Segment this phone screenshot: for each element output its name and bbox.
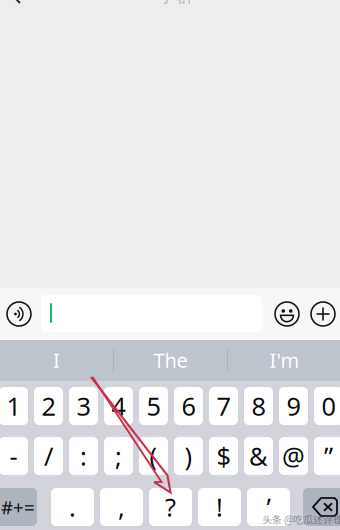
staticText: 8	[251, 389, 265, 423]
staticText: 4	[111, 389, 125, 423]
button[interactable]: Voice input	[0, 0, 24, 24]
button[interactable]: 4	[0, 0, 29, 38]
button[interactable]: 5	[0, 0, 29, 38]
button[interactable]: 2	[0, 0, 29, 38]
staticText: 7	[216, 389, 230, 423]
button[interactable]: Back	[0, 0, 26, 26]
staticText: 小群	[157, 0, 195, 7]
button[interactable]: ?	[0, 0, 43, 38]
button[interactable]: 3	[0, 0, 29, 38]
staticText: ,	[118, 490, 125, 524]
button[interactable]: 0	[0, 0, 29, 38]
staticText: (	[149, 439, 157, 473]
button[interactable]: )	[0, 0, 29, 38]
button[interactable]: The	[0, 0, 113, 40]
staticText: @	[282, 439, 305, 473]
button[interactable]: Delete	[0, 0, 44, 38]
staticText: 5	[146, 389, 160, 423]
staticText: $	[216, 439, 230, 473]
button[interactable]: ,	[0, 0, 43, 38]
staticText: -	[9, 439, 17, 473]
button[interactable]: $	[0, 0, 29, 38]
staticText: #+=	[1, 495, 35, 519]
staticText: 0	[321, 389, 335, 423]
button[interactable]: /	[0, 0, 29, 38]
staticText: I	[53, 347, 60, 373]
button[interactable]: ;	[0, 0, 29, 38]
staticText: ”	[324, 439, 333, 473]
button[interactable]: !	[0, 0, 43, 38]
button[interactable]: 7	[0, 0, 29, 38]
staticText: 3	[76, 389, 90, 423]
button[interactable]: I'm	[0, 0, 113, 40]
button[interactable]: Emoji	[0, 0, 24, 24]
staticText: :	[80, 439, 87, 473]
button[interactable]: @	[0, 0, 29, 38]
staticText: /	[44, 439, 53, 473]
button[interactable]: #+=	[0, 0, 44, 38]
staticText: 6	[181, 389, 195, 423]
staticText: I'm	[269, 347, 299, 373]
button[interactable]: -	[0, 0, 29, 38]
button[interactable]: 1	[0, 0, 29, 38]
staticText: ;	[115, 439, 122, 473]
staticText: 2	[41, 389, 55, 423]
button[interactable]: ’	[0, 0, 43, 38]
staticText: The	[153, 347, 187, 373]
staticText: )	[184, 439, 192, 473]
staticText: 1	[6, 389, 20, 423]
staticText: !	[216, 490, 223, 524]
staticText: .	[69, 490, 76, 524]
button[interactable]: I	[0, 0, 113, 40]
staticText: ?	[165, 490, 176, 524]
button[interactable]: &	[0, 0, 29, 38]
button[interactable]: :	[0, 0, 29, 38]
button[interactable]: 8	[0, 0, 29, 38]
button[interactable]: (	[0, 0, 29, 38]
button[interactable]: .	[0, 0, 43, 38]
button[interactable]: More	[0, 0, 24, 24]
button[interactable]: 9	[0, 0, 29, 38]
button[interactable]: ”	[0, 0, 29, 38]
staticText: 9	[286, 389, 300, 423]
button[interactable]: 6	[0, 0, 29, 38]
staticText: ’	[266, 490, 270, 524]
staticText: 头条 @吃瓜述评理	[262, 512, 340, 526]
staticText: &	[249, 439, 268, 473]
